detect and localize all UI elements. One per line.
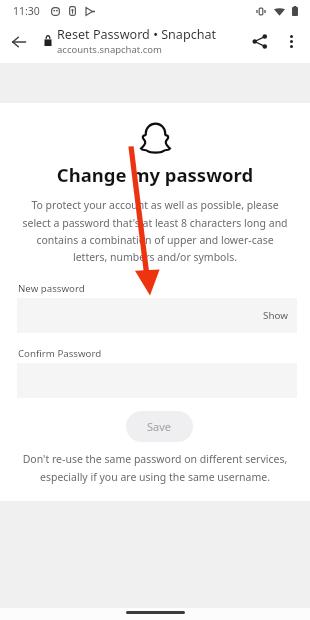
- button[interactable]: Show: [17, 298, 297, 333]
- button[interactable]: Share: [243, 21, 277, 62]
- button[interactable]: Save: [126, 411, 193, 442]
- staticText: 11:30: [13, 4, 40, 18]
- staticText: Reset Password • Snapchat: [57, 26, 217, 43]
- staticText: Change my password: [0, 162, 310, 187]
- button[interactable]: Back: [2, 21, 36, 62]
- staticText: New password: [18, 282, 85, 295]
- button[interactable]: More options: [275, 21, 307, 62]
- staticText: To protect your account as well as possi…: [19, 198, 291, 264]
- staticText: Don't re-use the same password on differ…: [16, 452, 294, 484]
- staticText: accounts.snapchat.com: [57, 43, 162, 56]
- staticText: Confirm Password: [18, 347, 102, 360]
- staticText: Save: [147, 419, 172, 434]
- staticText: Show: [263, 309, 288, 322]
